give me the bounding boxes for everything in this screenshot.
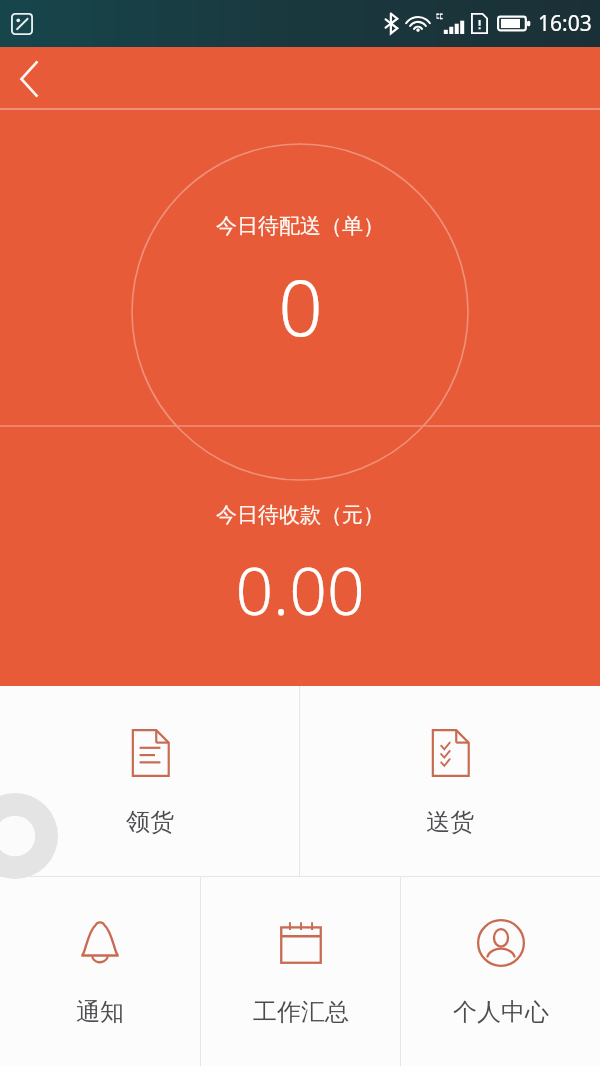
button[interactable]: Back	[0, 50, 58, 108]
staticText: 16:03	[538, 9, 592, 38]
staticText: 工作汇总	[253, 997, 349, 1027]
button[interactable]: 通知	[0, 877, 200, 1066]
staticText: 个人中心	[453, 997, 549, 1027]
staticText: 0.00	[235, 544, 365, 634]
button[interactable]: 个人中心	[401, 877, 600, 1066]
button[interactable]: 领货	[0, 686, 299, 877]
staticText: 通知	[76, 997, 124, 1027]
staticText: 今日待配送（单）	[216, 213, 384, 239]
staticText: 领货	[126, 807, 174, 837]
staticText: 0	[278, 253, 323, 359]
button[interactable]: 送货	[300, 686, 600, 877]
staticText: 今日待收款（元）	[216, 502, 384, 528]
staticText: 送货	[426, 807, 474, 837]
button[interactable]: 工作汇总	[201, 877, 400, 1066]
button[interactable]: Assistive touch	[0, 793, 58, 879]
